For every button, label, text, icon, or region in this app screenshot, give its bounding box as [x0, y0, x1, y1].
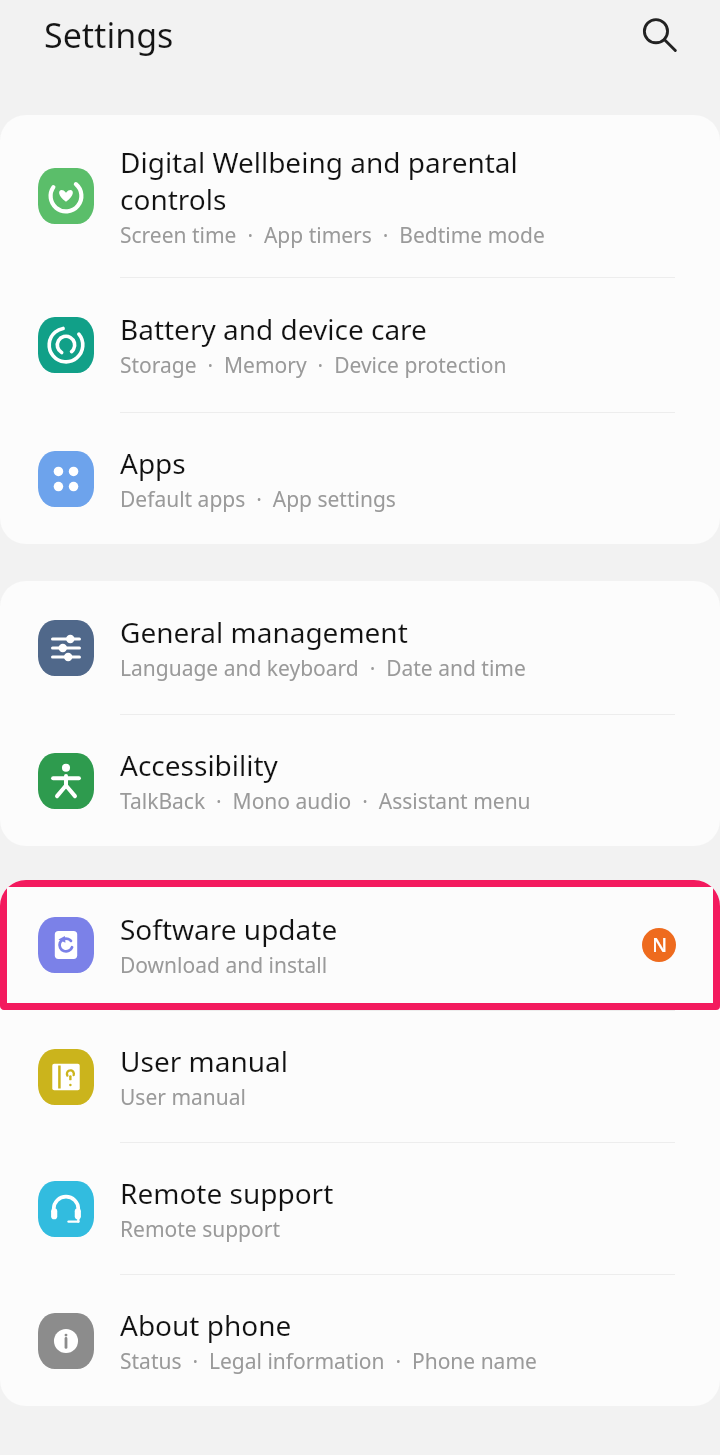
staticText: Screen time · App timers · Bedtime mode — [120, 221, 545, 250]
staticText: Accessibility — [120, 746, 278, 784]
button[interactable]: User manual — [0, 1011, 720, 1142]
staticText: General management — [120, 613, 408, 651]
button[interactable]: Search — [630, 6, 688, 64]
staticText: Remote support — [120, 1215, 280, 1244]
button[interactable]: Accessibility — [0, 715, 720, 846]
staticText: Settings — [44, 12, 174, 58]
staticText: User manual — [120, 1083, 246, 1112]
staticText: Storage · Memory · Device protection — [120, 351, 507, 380]
staticText: Status · Legal information · Phone name — [120, 1347, 537, 1376]
button[interactable]: About phone — [0, 1275, 720, 1406]
button[interactable]: Software update — [0, 880, 720, 1010]
button[interactable]: Battery and device care — [0, 278, 720, 412]
staticText: User manual — [120, 1042, 288, 1080]
button[interactable]: Remote support — [0, 1143, 720, 1274]
staticText: Download and install — [120, 951, 328, 980]
staticText: About phone — [120, 1306, 292, 1344]
staticText: Battery and device care — [120, 310, 427, 348]
button[interactable]: General management — [0, 581, 720, 714]
staticText: Software update — [120, 910, 338, 948]
staticText: Language and keyboard · Date and time — [120, 654, 526, 683]
staticText: N — [652, 932, 667, 958]
staticText: Remote support — [120, 1174, 334, 1212]
staticText: Apps — [120, 444, 186, 482]
button[interactable]: Apps — [0, 413, 720, 544]
staticText: Default apps · App settings — [120, 485, 396, 514]
button[interactable]: Digital Wellbeing and parental controls — [0, 115, 720, 277]
staticText: TalkBack · Mono audio · Assistant menu — [120, 787, 531, 816]
staticText: Digital Wellbeing and parental controls — [120, 143, 518, 218]
